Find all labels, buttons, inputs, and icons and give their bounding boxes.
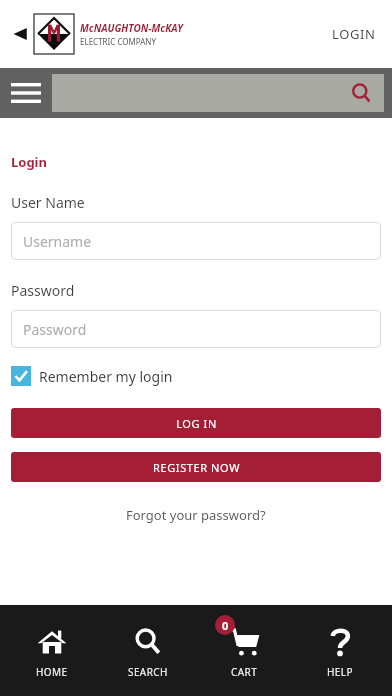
button[interactable]: LOGIN [326, 19, 382, 49]
staticText: Username [23, 232, 92, 251]
staticText: McNAUGHTON-McKAY [80, 21, 183, 35]
staticText: HOME [36, 665, 68, 679]
staticText: LOGIN [332, 25, 376, 43]
button[interactable]: Help [296, 605, 384, 696]
staticText: HELP [327, 665, 353, 679]
staticText: Password [11, 281, 75, 300]
button[interactable]: Remember my login [11, 366, 173, 386]
staticText: Remember my login [39, 367, 173, 386]
button[interactable]: McNAUGHTON-McKAY [34, 14, 183, 54]
button[interactable]: Search [52, 74, 384, 112]
other: Search [348, 80, 374, 106]
button[interactable]: Forgot your password? [122, 502, 270, 528]
other: Home [37, 627, 67, 657]
button[interactable]: Password [11, 310, 381, 348]
button[interactable]: Back [4, 18, 36, 50]
button[interactable]: Search [104, 605, 192, 696]
button[interactable]: Home [8, 605, 96, 696]
staticText: LOG IN [176, 416, 217, 431]
other: Help [325, 627, 355, 657]
other: Search [133, 627, 163, 657]
button[interactable]: Cart [200, 605, 288, 696]
button[interactable]: Menu [0, 68, 52, 118]
staticText: 0 [222, 618, 229, 633]
button[interactable]: REGISTER NOW [11, 452, 381, 482]
staticText: ELECTRIC COMPANY [80, 36, 156, 47]
staticText: Forgot your password? [126, 506, 266, 524]
button[interactable]: LOG IN [11, 408, 381, 438]
button[interactable]: Username [11, 222, 381, 260]
staticText: User Name [11, 193, 85, 212]
staticText: SEARCH [128, 665, 168, 679]
staticText: CART [231, 665, 258, 679]
staticText: Password [23, 320, 87, 339]
other: Cart [228, 626, 260, 658]
staticText: REGISTER NOW [153, 460, 240, 475]
staticText: Login [11, 153, 47, 171]
